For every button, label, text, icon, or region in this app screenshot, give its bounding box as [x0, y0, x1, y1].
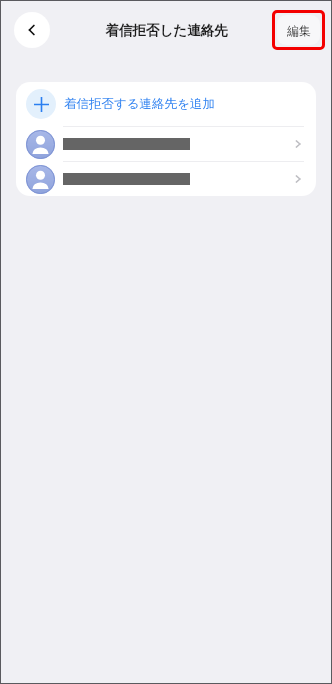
button[interactable]: 戻る: [14, 12, 50, 48]
button[interactable]: 編集: [277, 15, 320, 45]
staticText: 編集: [287, 23, 311, 38]
staticText: 着信拒否する連絡先を追加: [64, 96, 215, 112]
button[interactable]: [16, 162, 316, 196]
staticText: 着信拒否した連絡先: [105, 22, 228, 39]
button[interactable]: 着信拒否する連絡先を追加: [16, 82, 316, 126]
button[interactable]: [16, 127, 316, 161]
